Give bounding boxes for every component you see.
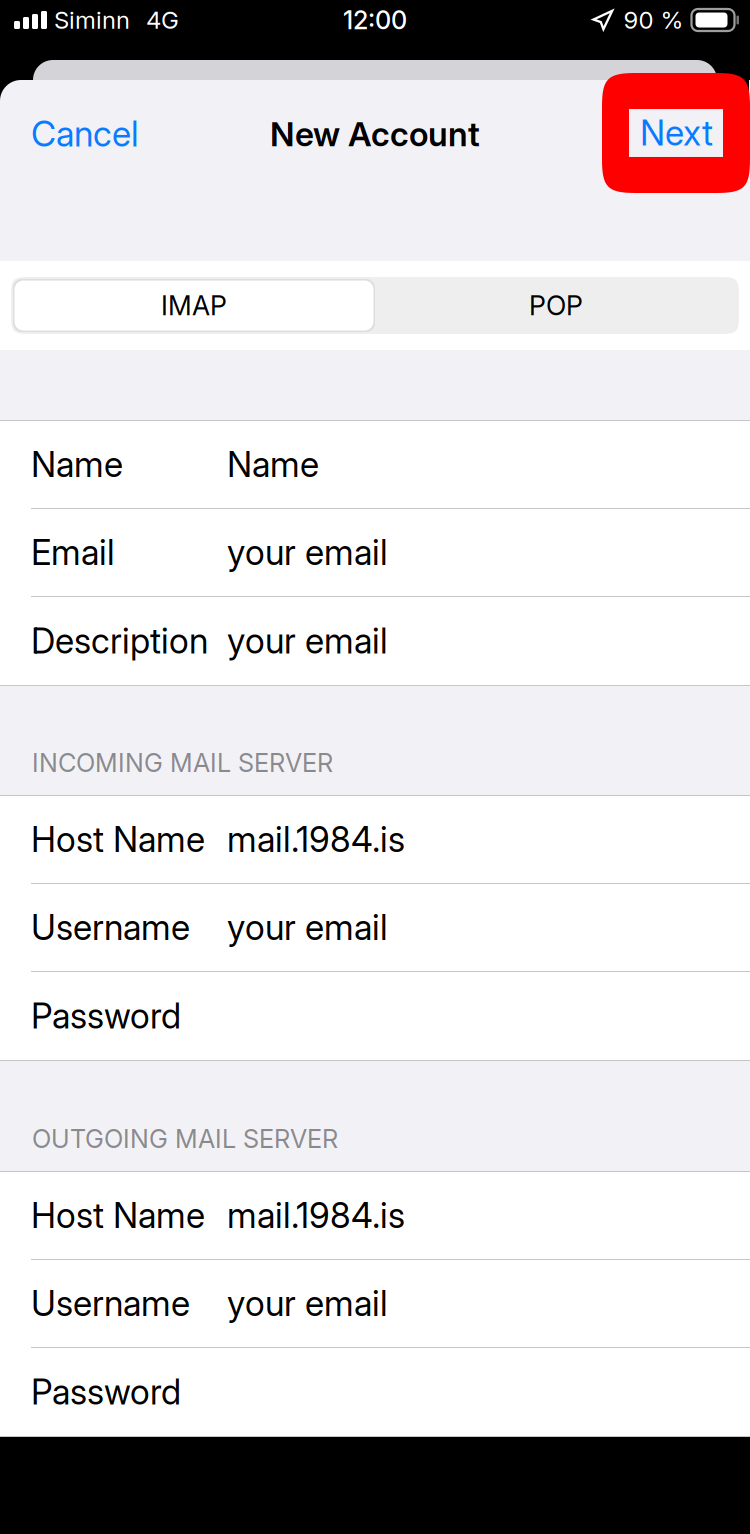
button[interactable]: Next [602,73,750,193]
button[interactable]: Email [0,509,750,597]
staticText: your email [227,620,388,662]
button[interactable]: Host Name [0,796,750,884]
staticText: Password [31,995,181,1037]
button[interactable]: Username [0,884,750,972]
staticText: your email [227,1282,388,1324]
staticText: Next [640,112,713,154]
staticText: Name [227,443,319,485]
staticText: 4G [146,5,179,34]
staticText: INCOMING MAIL SERVER [32,747,333,778]
button[interactable]: Username [0,1260,750,1348]
button[interactable]: Description [0,597,750,685]
staticText: Name [31,443,123,485]
staticText: mail.1984.is [227,818,405,860]
staticText: Password [31,1371,181,1413]
staticText: New Account [270,114,480,154]
staticText: IMAP [161,289,227,322]
staticText: your email [227,906,388,948]
staticText: mail.1984.is [227,1194,405,1236]
staticText: 90 % [623,5,683,34]
staticText: OUTGOING MAIL SERVER [32,1123,338,1154]
staticText: Cancel [31,113,139,155]
staticText: Host Name [31,818,205,860]
staticText: Email [31,531,115,573]
button[interactable]: POP [375,279,737,332]
staticText: Username [31,1282,190,1324]
staticText: Username [31,906,190,948]
staticText: Host Name [31,1194,205,1236]
button[interactable]: Host Name [0,1172,750,1260]
button[interactable]: IMAP [13,279,375,332]
button[interactable]: Password [0,972,750,1060]
button[interactable]: Name [0,421,750,509]
staticText: POP [529,289,583,322]
staticText: your email [227,531,388,573]
staticText: Description [31,620,208,662]
staticText: 12:00 [343,5,407,35]
button[interactable]: Cancel [0,101,155,167]
button[interactable]: Password [0,1348,750,1436]
staticText: Siminn [54,5,130,34]
